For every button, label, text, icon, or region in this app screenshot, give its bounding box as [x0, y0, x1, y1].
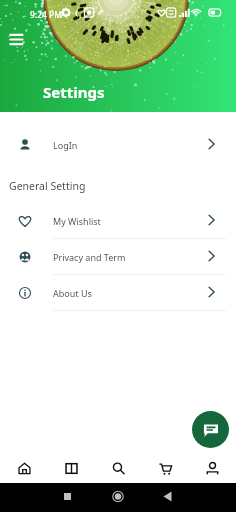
button[interactable]: Chat: [192, 411, 229, 448]
staticText: LogIn: [53, 139, 78, 151]
button[interactable]: Menu: [8, 30, 27, 49]
button[interactable]: Privacy and Term: [0, 239, 236, 275]
button[interactable]: Library: [48, 452, 95, 484]
staticText: Settings: [43, 82, 105, 102]
button[interactable]: Home: [0, 452, 48, 484]
button[interactable]: Cart: [142, 452, 189, 484]
staticText: 9:24 PM: [30, 9, 63, 21]
staticText: General Setting: [9, 179, 86, 193]
button[interactable]: Search: [95, 452, 142, 484]
staticText: About Us: [53, 287, 92, 299]
button[interactable]: Profile: [189, 452, 236, 484]
staticText: My Wishlist: [53, 215, 101, 227]
button[interactable]: LogIn: [0, 127, 236, 163]
staticText: Privacy and Term: [53, 251, 126, 263]
button[interactable]: About Us: [0, 275, 236, 311]
button[interactable]: My Wishlist: [0, 203, 236, 239]
